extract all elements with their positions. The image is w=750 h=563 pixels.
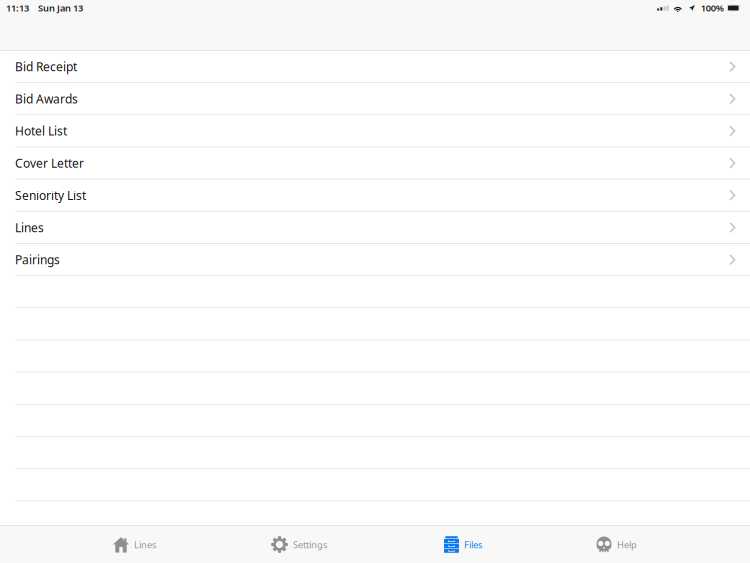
staticText: 11:13	[6, 2, 29, 14]
button[interactable]: Seniority List	[0, 180, 750, 212]
button[interactable]: Settings	[271, 526, 327, 563]
staticText: Settings	[293, 538, 327, 551]
staticText: Sun Jan 13	[38, 2, 83, 14]
staticText: Cover Letter	[15, 155, 84, 171]
button[interactable]: Hotel List	[0, 115, 750, 148]
button[interactable]: Pairings	[0, 244, 750, 276]
staticText: Pairings	[15, 252, 60, 268]
staticText: Help	[617, 538, 637, 551]
button[interactable]: Lines	[0, 212, 750, 244]
button[interactable]: Help	[596, 526, 637, 563]
button[interactable]: Bid Awards	[0, 83, 750, 115]
button[interactable]: Lines	[113, 526, 156, 563]
staticText: Lines	[134, 538, 156, 551]
button[interactable]: Files	[444, 526, 482, 563]
button[interactable]: Cover Letter	[0, 147, 750, 180]
staticText: Seniority List	[15, 187, 86, 203]
staticText: Files	[464, 538, 482, 551]
button[interactable]: Bid Receipt	[0, 51, 750, 83]
staticText: Lines	[15, 219, 44, 235]
staticText: Bid Awards	[15, 91, 78, 107]
staticText: Hotel List	[15, 123, 67, 139]
staticText: 100%	[701, 2, 724, 14]
staticText: Bid Receipt	[15, 59, 77, 74]
